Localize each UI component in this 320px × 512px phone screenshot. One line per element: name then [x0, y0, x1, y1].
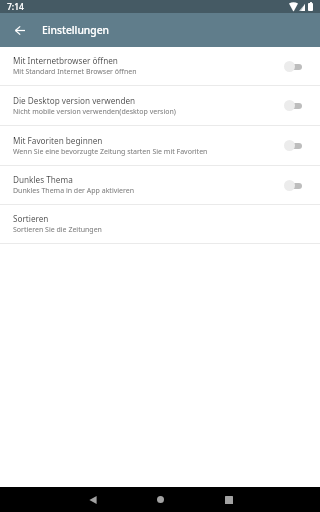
staticText: Nicht mobile version verwenden(desktop v…	[13, 107, 176, 117]
staticText: Wenn Sie eine bevorzugte Zeitung starten…	[13, 147, 208, 157]
staticText: Mit Favoriten beginnen	[13, 135, 103, 146]
button[interactable]: Back	[70, 487, 115, 512]
staticText: Dunkles Thema in der App aktivieren	[13, 186, 135, 196]
staticText: Mit Internetbrowser öffnen	[13, 55, 118, 66]
button[interactable]: Home	[138, 487, 183, 512]
staticText: Die Desktop version verwenden	[13, 95, 136, 106]
staticText: Mit Standard Internet Browser öffnen	[13, 67, 137, 77]
button[interactable]: Recent apps	[206, 487, 251, 512]
staticText: Dunkles Thema	[13, 174, 73, 185]
staticText: Sortieren Sie die Zeitungen	[13, 225, 102, 235]
staticText: 7:14	[7, 1, 24, 13]
button[interactable]: Dunkles Thema	[0, 166, 320, 204]
button[interactable]: Die Desktop version verwenden	[0, 86, 320, 125]
button[interactable]: Mit Favoriten beginnen	[0, 126, 320, 165]
staticText: Einstellungen	[42, 23, 110, 37]
button[interactable]: Sortieren	[0, 205, 320, 243]
button[interactable]: Mit Internetbrowser öffnen	[0, 47, 320, 85]
button[interactable]: Navigate up	[5, 16, 34, 45]
staticText: Sortieren	[13, 213, 49, 224]
